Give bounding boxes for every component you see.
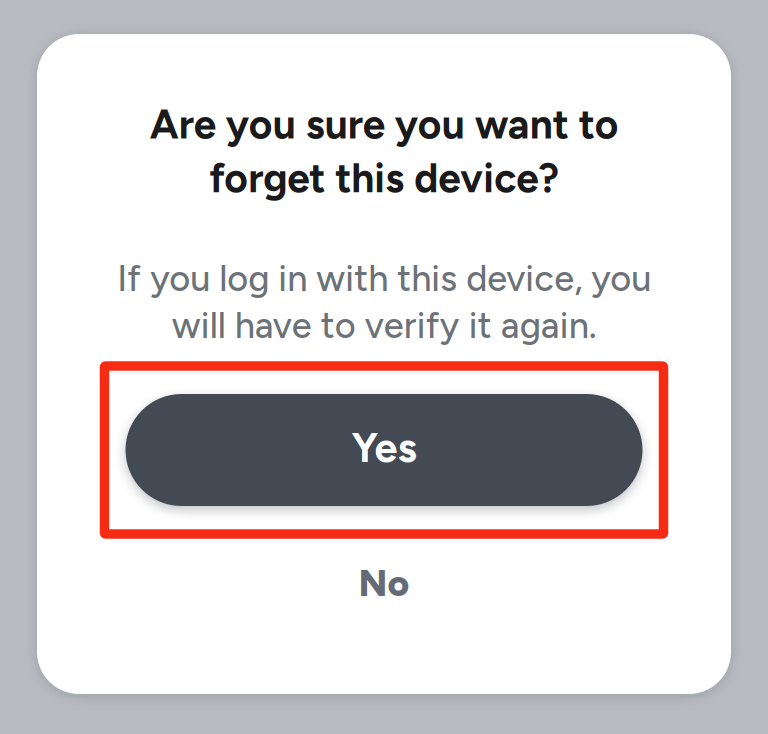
staticText: If you log in with this device, you will… bbox=[117, 257, 651, 347]
staticText: Yes bbox=[351, 423, 416, 472]
staticText: No bbox=[358, 561, 409, 605]
staticText: Are you sure you want to forget this dev… bbox=[149, 100, 618, 202]
button[interactable]: No bbox=[294, 557, 474, 609]
button[interactable]: Yes bbox=[125, 394, 642, 506]
